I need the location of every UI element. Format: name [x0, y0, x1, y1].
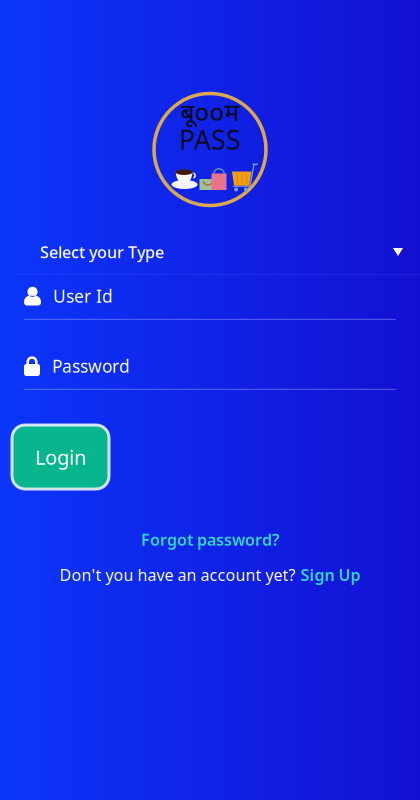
button[interactable]: Forgot password?: [141, 529, 279, 550]
staticText: Password: [52, 354, 130, 377]
button[interactable]: Select your Type: [0, 239, 420, 275]
staticText: Don't you have an account yet?: [59, 564, 295, 585]
button[interactable]: Login: [12, 425, 109, 489]
staticText: Sign Up: [300, 564, 360, 585]
staticText: Select your Type: [40, 241, 164, 263]
button[interactable]: Sign Up: [300, 564, 360, 585]
staticText: Login: [35, 444, 86, 470]
staticText: User Id: [53, 284, 113, 307]
staticText: बूooम: [180, 96, 239, 127]
staticText: Forgot password?: [141, 529, 279, 550]
staticText: PASS: [179, 122, 241, 157]
